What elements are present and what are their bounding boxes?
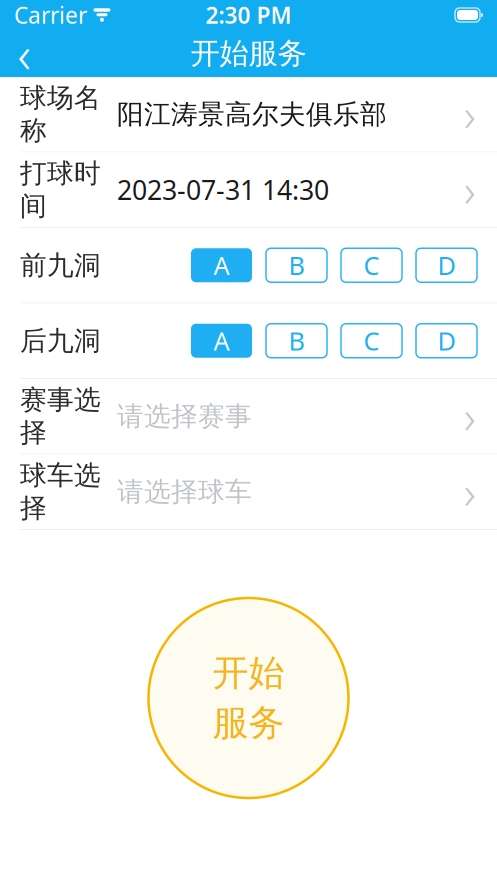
staticText: B [288,324,304,357]
staticText: › [464,386,476,446]
button[interactable]: 赛事选择 [0,379,497,453]
staticText: 2023-07-31 14:30 [117,172,329,207]
staticText: 请选择球车 [117,475,252,508]
staticText: › [464,462,476,522]
button[interactable]: D [416,248,477,282]
staticText: 前九洞 [20,249,101,282]
staticText: D [437,324,455,357]
button[interactable]: B [266,324,327,358]
staticText: C [363,248,379,282]
staticText: C [363,324,379,357]
staticText: › [464,84,476,144]
staticText: 2:30 PM [205,0,291,30]
button[interactable]: 打球时间 [0,152,497,227]
staticText: B [288,248,304,282]
staticText: D [437,248,455,282]
staticText: 开始服务 [190,35,306,71]
button[interactable]: A [191,248,252,282]
button[interactable]: B [266,248,327,282]
staticText: 打球时间 [20,157,101,222]
button[interactable]: 开始 [148,598,348,798]
staticText: 阳江涛景高尔夫俱乐部 [117,98,387,131]
staticText: 球车选择 [20,459,101,524]
button[interactable]: C [341,324,402,358]
button[interactable]: C [341,248,402,282]
staticText: A [213,248,229,282]
button[interactable]: A [191,324,252,358]
staticText: 请选择赛事 [117,400,252,433]
staticText: ‹ [17,20,30,87]
staticText: › [464,160,476,220]
button[interactable]: 球车选择 [0,454,497,529]
staticText: 赛事选择 [20,383,101,449]
staticText: Carrier [14,0,87,30]
staticText: 球场名称 [20,81,101,147]
button[interactable]: Back [0,30,48,77]
button[interactable]: D [416,324,477,358]
staticText: A [213,324,229,357]
button[interactable]: 球场名称 [0,77,497,151]
staticText: 后九洞 [20,324,101,357]
staticText: 开始 [212,651,284,695]
staticText: 服务 [212,701,284,745]
